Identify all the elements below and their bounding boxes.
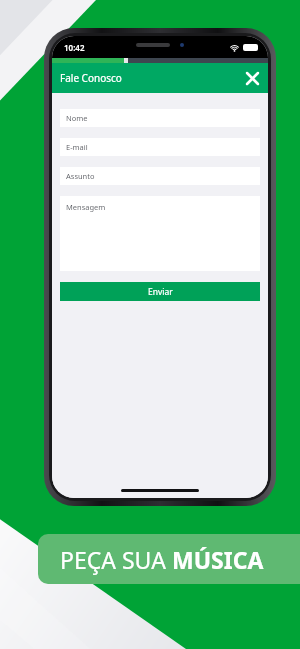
button[interactable]: Fechar — [240, 66, 264, 90]
staticText: Enviar — [148, 286, 173, 298]
staticText: PEÇA SUA — [60, 544, 172, 575]
staticText: Mensagem — [66, 202, 106, 212]
button[interactable]: Assunto — [60, 167, 260, 185]
button[interactable]: Enviar — [60, 282, 260, 301]
staticText: Assunto — [66, 171, 95, 181]
staticText: MÚSICA — [172, 544, 264, 575]
staticText: Fale Conosco — [60, 71, 122, 85]
button[interactable]: E-mail — [60, 138, 260, 156]
staticText: 10:42 — [64, 42, 85, 53]
staticText: Nome — [66, 113, 88, 123]
button[interactable]: Nome — [60, 109, 260, 127]
staticText: E-mail — [66, 142, 88, 152]
button[interactable]: Mensagem — [60, 196, 260, 271]
